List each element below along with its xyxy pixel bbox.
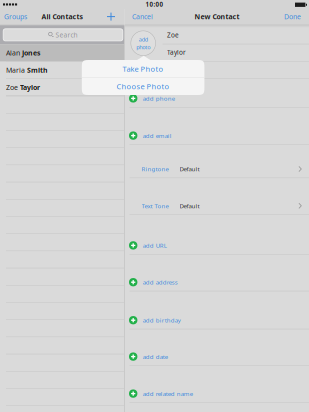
button[interactable]: Choose Photo <box>82 78 204 95</box>
staticText: add URL <box>143 241 167 250</box>
staticText: Alan Jones <box>6 48 40 57</box>
button[interactable]: Text Tone <box>125 197 309 214</box>
button[interactable]: Done <box>272 13 301 21</box>
staticText: Default <box>180 165 200 173</box>
button[interactable]: Maria Smith <box>0 61 124 79</box>
staticText: add birthday <box>143 316 181 324</box>
staticText: Maria Smith <box>6 65 48 75</box>
staticText: photo <box>136 43 150 51</box>
staticText: Zoe <box>167 31 179 39</box>
button[interactable]: add related name <box>125 385 309 402</box>
staticText: Done <box>284 12 301 21</box>
button[interactable]: add phone <box>125 90 309 107</box>
button[interactable]: Add contact <box>107 13 115 21</box>
button[interactable]: add URL <box>125 237 309 254</box>
staticText: Zoe Taylor <box>6 83 40 92</box>
staticText: Groups <box>4 12 27 21</box>
button[interactable]: add email <box>125 127 309 144</box>
button[interactable]: Zoe Taylor <box>0 79 124 96</box>
staticText: Cancel <box>132 12 153 21</box>
button[interactable]: add date <box>125 348 309 365</box>
button[interactable]: Take Photo <box>82 60 204 77</box>
button[interactable]: add birthday <box>125 312 309 329</box>
staticText: 10:00 <box>145 0 163 8</box>
staticText: Text Tone <box>142 202 169 210</box>
staticText: New Contact <box>194 12 239 21</box>
staticText: add email <box>143 131 172 140</box>
staticText: Default <box>180 202 200 210</box>
staticText: Taylor <box>167 48 186 57</box>
button[interactable]: add address <box>125 274 309 291</box>
staticText: add address <box>143 278 178 286</box>
button[interactable]: Ringtone <box>125 160 309 178</box>
staticText: add date <box>143 352 168 361</box>
button[interactable]: Search <box>3 29 123 41</box>
staticText: All Contacts <box>41 12 82 21</box>
staticText: add <box>139 35 148 43</box>
button[interactable]: Add photo <box>131 31 156 56</box>
staticText: Take Photo <box>123 64 164 74</box>
button[interactable]: Alan Jones <box>0 44 124 61</box>
staticText: Choose Photo <box>117 81 170 92</box>
button[interactable]: Cancel <box>132 13 166 21</box>
staticText: add related name <box>143 389 193 398</box>
staticText: add phone <box>143 94 175 103</box>
staticText: Ringtone <box>142 165 169 173</box>
staticText: Search <box>55 30 77 39</box>
button[interactable]: Groups <box>4 13 36 21</box>
